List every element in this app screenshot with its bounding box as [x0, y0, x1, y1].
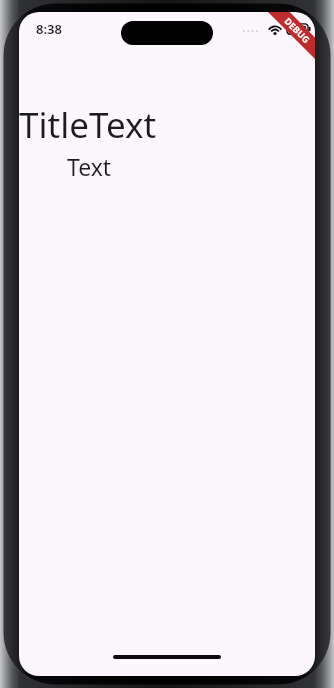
button[interactable]: Text	[67, 151, 112, 182]
staticText: 8:38	[36, 20, 62, 38]
button[interactable]: TitleText	[19, 101, 157, 149]
staticText: DEBUG	[282, 15, 313, 45]
